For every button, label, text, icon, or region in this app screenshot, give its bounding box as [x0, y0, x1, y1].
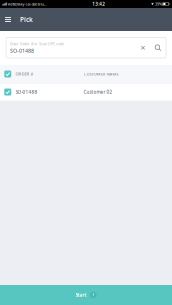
button[interactable]: Clear [136, 38, 150, 58]
staticText: Pick [20, 15, 33, 24]
button[interactable]: Search [150, 38, 166, 58]
staticText: 39% [154, 1, 162, 7]
staticText: SO-01488 [15, 89, 37, 95]
staticText: Start [75, 292, 86, 298]
staticText: ORDER # [15, 71, 33, 77]
staticText: Enter Order # or Scan UPC code [10, 41, 64, 46]
staticText: SO-01488 [10, 47, 34, 54]
staticText: CUSTOMER NAME [83, 71, 118, 77]
button[interactable]: Menu [0, 8, 16, 31]
staticText: Viettel#-ky cai dat Blu... [6, 1, 46, 7]
button[interactable]: SO-01488 [0, 83, 172, 100]
staticText: 1 [92, 293, 94, 297]
staticText: Customer 02 [83, 89, 112, 95]
staticText: 13:42 [92, 1, 105, 7]
button[interactable]: Start [0, 285, 172, 305]
button[interactable]: Select all orders [0, 65, 15, 83]
